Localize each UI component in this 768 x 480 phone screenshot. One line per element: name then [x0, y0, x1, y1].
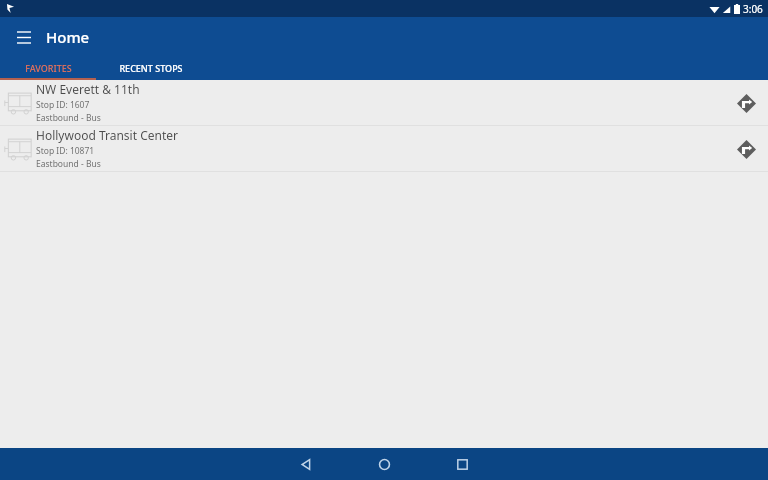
button[interactable]: Back [279, 448, 333, 480]
button[interactable]: Hollywood Transit Center [0, 126, 768, 171]
button[interactable]: FAVORITES [0, 56, 96, 80]
staticText: Eastbound - Bus [36, 112, 101, 124]
staticText: Stop ID: 10871 [36, 145, 95, 157]
button[interactable]: Home [357, 448, 411, 480]
staticText: Home [46, 27, 90, 47]
button[interactable]: NW Everett & 11th [0, 80, 768, 125]
staticText: RECENT STOPS [119, 62, 183, 74]
staticText: FAVORITES [25, 62, 72, 74]
staticText: NW Everett & 11th [36, 81, 140, 97]
button[interactable]: Recent apps [435, 448, 489, 480]
button[interactable]: Directions [724, 127, 768, 171]
button[interactable]: RECENT STOPS [96, 56, 206, 80]
button[interactable]: Open navigation drawer [10, 23, 38, 51]
staticText: Stop ID: 1607 [36, 99, 90, 111]
staticText: Hollywood Transit Center [36, 127, 178, 143]
staticText: 3:06 [743, 2, 763, 16]
button[interactable]: Directions [724, 81, 768, 125]
staticText: Eastbound - Bus [36, 158, 101, 170]
